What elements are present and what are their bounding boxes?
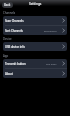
staticText: Back: [4, 3, 11, 7]
staticText: 200 msec: [46, 62, 57, 65]
button[interactable]: USB device info: [3, 42, 67, 51]
staticText: App: [3, 54, 9, 58]
staticText: Bookmarks: [44, 29, 57, 32]
staticText: Channels: [3, 11, 16, 15]
staticText: Device: [3, 37, 12, 41]
button[interactable]: About: [3, 69, 67, 78]
button[interactable]: Back: [2, 2, 13, 8]
staticText: USB device info: [5, 45, 25, 49]
staticText: Settings: [29, 2, 42, 6]
staticText: Transmit button: [5, 62, 26, 66]
staticText: Scan Channels: [5, 19, 24, 23]
staticText: Sort Channels: [5, 29, 23, 33]
button[interactable]: Sort Channels: [3, 26, 67, 35]
staticText: About: [5, 72, 13, 76]
button[interactable]: Scan Channels: [3, 16, 67, 25]
button[interactable]: Transmit button: [3, 59, 67, 68]
